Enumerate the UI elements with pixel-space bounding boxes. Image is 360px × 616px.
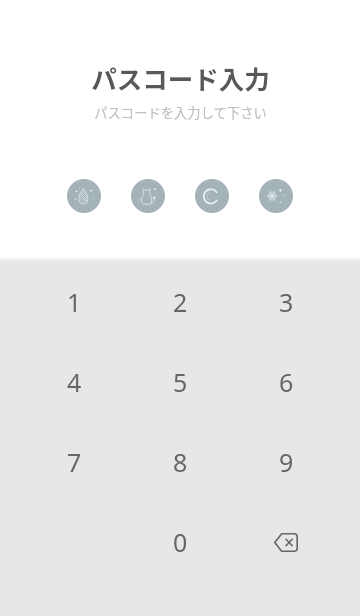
other: Passcode digit 1 [67, 179, 101, 213]
button[interactable]: 0 [127, 502, 233, 582]
button[interactable]: 4 [21, 342, 127, 422]
staticText: 8 [173, 445, 188, 479]
button[interactable]: 7 [21, 422, 127, 502]
staticText: 5 [173, 365, 188, 399]
button[interactable]: 5 [127, 342, 233, 422]
button[interactable]: 8 [127, 422, 233, 502]
staticText: 0 [173, 525, 188, 559]
staticText: 1 [67, 285, 82, 319]
staticText: 6 [279, 365, 294, 399]
staticText: パスコードを入力して下さい [94, 103, 267, 122]
other: Passcode digit 3 [195, 179, 229, 213]
other: Passcode digit 4 [259, 179, 293, 213]
staticText: パスコード入力 [91, 59, 270, 96]
other: Passcode digit 2 [131, 179, 165, 213]
button[interactable]: 2 [127, 262, 233, 342]
staticText: 2 [173, 285, 188, 319]
button[interactable]: 9 [233, 422, 339, 502]
button[interactable]: 3 [233, 262, 339, 342]
staticText: 9 [279, 445, 294, 479]
staticText: 3 [279, 285, 294, 319]
staticText: 4 [67, 365, 82, 399]
button[interactable]: 6 [233, 342, 339, 422]
button[interactable]: 1 [21, 262, 127, 342]
staticText: 7 [67, 445, 82, 479]
button[interactable]: Backspace [233, 502, 339, 582]
